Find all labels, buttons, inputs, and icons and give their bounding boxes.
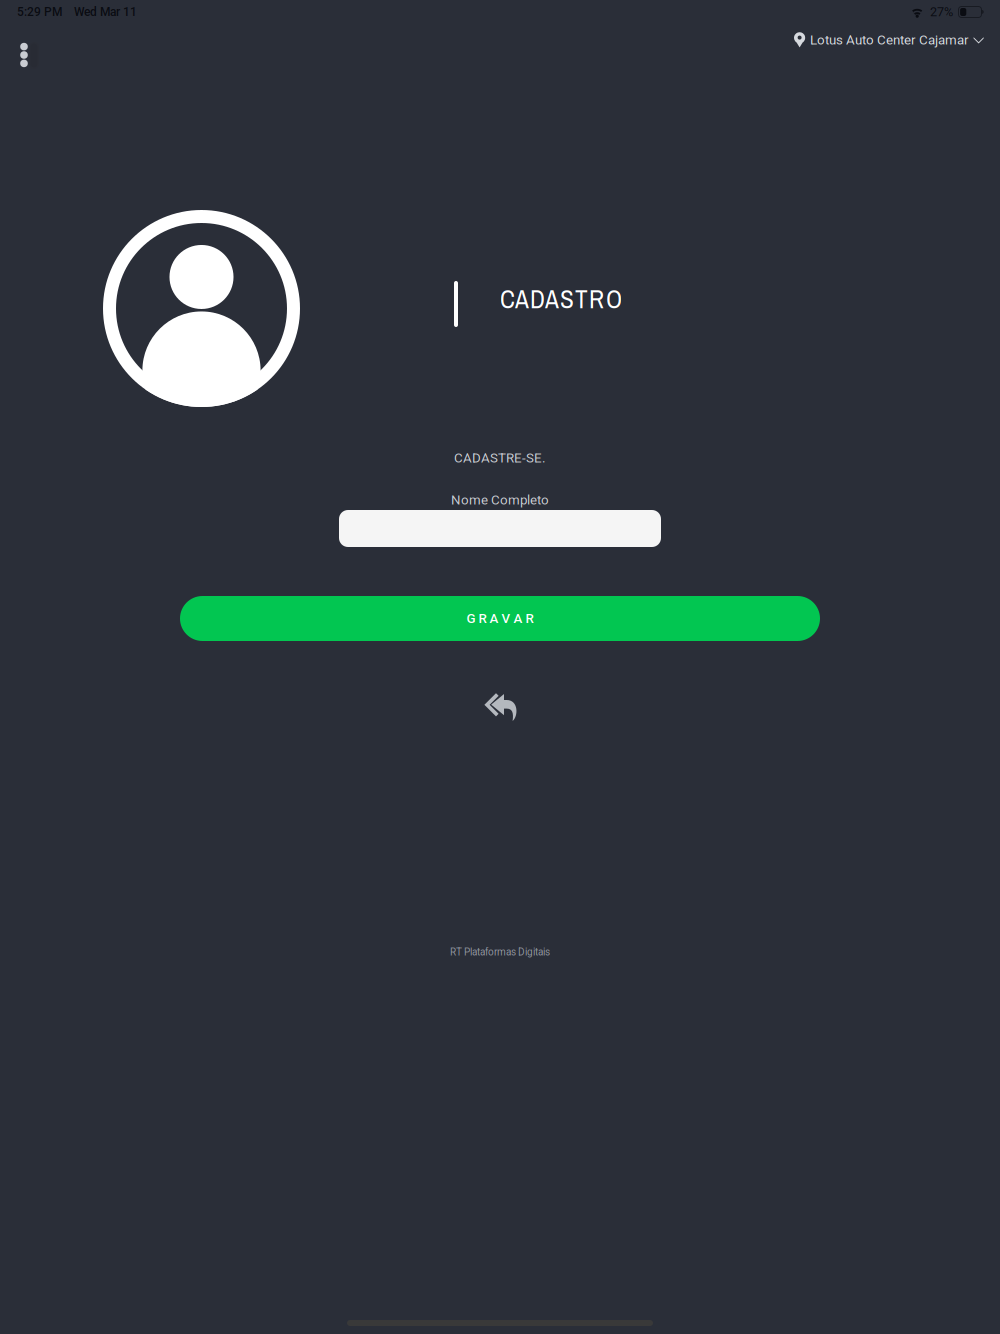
staticText: 27% — [930, 5, 953, 19]
staticText: G R A V A R — [466, 611, 533, 626]
button[interactable]: Voltar — [470, 684, 530, 728]
staticText: Wed Mar 11 — [74, 5, 137, 19]
staticText: Nome Completo — [451, 492, 549, 508]
staticText: CADASTRE-SE. — [454, 450, 546, 466]
staticText: C A D A S T R O — [500, 282, 622, 316]
staticText: RT Plataformas Digitais — [450, 946, 550, 958]
button[interactable]: G R A V A R — [180, 596, 820, 641]
staticText: 5:29 PM — [17, 5, 62, 19]
staticText: Lotus Auto Center Cajamar — [810, 32, 969, 48]
button[interactable]: Menu — [2, 33, 46, 77]
button[interactable]: Lotus Auto Center Cajamar — [789, 25, 989, 55]
